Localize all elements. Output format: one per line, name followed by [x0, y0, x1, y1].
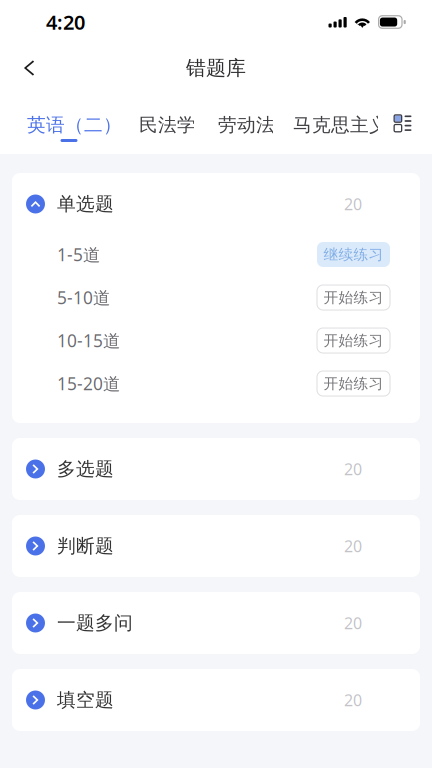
- button[interactable]: 返回: [5, 44, 53, 92]
- staticText: 4:20: [46, 9, 85, 35]
- button[interactable]: 开始练习: [317, 371, 390, 396]
- staticText: 20: [344, 689, 362, 711]
- button[interactable]: 继续练习: [317, 242, 390, 267]
- staticText: 单选题: [57, 192, 114, 215]
- staticText: 判断题: [57, 534, 114, 557]
- staticText: 英语（二）: [27, 113, 122, 136]
- button[interactable]: 一题多问: [12, 592, 420, 654]
- button[interactable]: 劳动法: [218, 92, 273, 154]
- staticText: 1-5道: [57, 243, 100, 266]
- button[interactable]: 民法学: [139, 92, 194, 154]
- staticText: 马克思主义基本原理: [293, 113, 432, 136]
- button[interactable]: 多选题: [12, 438, 420, 500]
- staticText: 错题库: [186, 56, 246, 80]
- button[interactable]: 单选题: [12, 173, 420, 233]
- button[interactable]: 马克思主义基本原理: [293, 92, 378, 154]
- staticText: 开始练习: [323, 288, 383, 306]
- button[interactable]: 判断题: [12, 515, 420, 577]
- button[interactable]: 填空题: [12, 669, 420, 731]
- staticText: 开始练习: [323, 374, 383, 392]
- button[interactable]: 开始练习: [317, 328, 390, 353]
- button[interactable]: 切换科目列表: [384, 92, 432, 154]
- staticText: 10-15道: [57, 329, 120, 352]
- staticText: 20: [344, 535, 362, 557]
- staticText: 一题多问: [57, 611, 133, 634]
- staticText: 20: [344, 612, 362, 634]
- staticText: 20: [344, 458, 362, 480]
- staticText: 20: [344, 193, 362, 215]
- staticText: 开始练习: [323, 331, 383, 349]
- button[interactable]: 英语（二）: [27, 92, 111, 154]
- staticText: 5-10道: [57, 286, 110, 309]
- staticText: 继续练习: [323, 245, 383, 263]
- staticText: 民法学: [139, 113, 196, 136]
- staticText: 劳动法: [218, 113, 275, 136]
- staticText: 15-20道: [57, 372, 120, 395]
- button[interactable]: 开始练习: [317, 285, 390, 310]
- staticText: 填空题: [57, 688, 114, 711]
- staticText: 多选题: [57, 457, 114, 480]
